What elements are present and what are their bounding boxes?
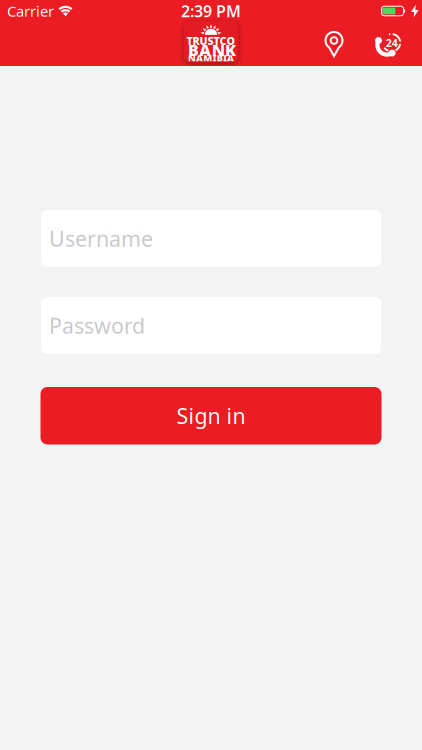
staticText: Carrier: [7, 1, 54, 21]
staticText: BANK: [188, 39, 236, 60]
staticText: TRUSTCO: [186, 34, 235, 48]
staticText: Username: [49, 224, 153, 253]
staticText: NAMIBIA: [188, 51, 234, 64]
staticText: Password: [49, 311, 145, 340]
button[interactable]: Branch locator: [322, 31, 346, 57]
staticText: 24: [386, 36, 398, 50]
staticText: Sign in: [176, 402, 245, 430]
staticText: 2:39 PM: [181, 0, 241, 22]
button[interactable]: 24-hour support: [370, 26, 406, 62]
button[interactable]: Sign in: [40, 387, 381, 444]
button[interactable]: Trustco Bank Namibia: [183, 21, 238, 62]
button[interactable]: Username: [41, 210, 381, 267]
button[interactable]: Password: [41, 297, 381, 354]
